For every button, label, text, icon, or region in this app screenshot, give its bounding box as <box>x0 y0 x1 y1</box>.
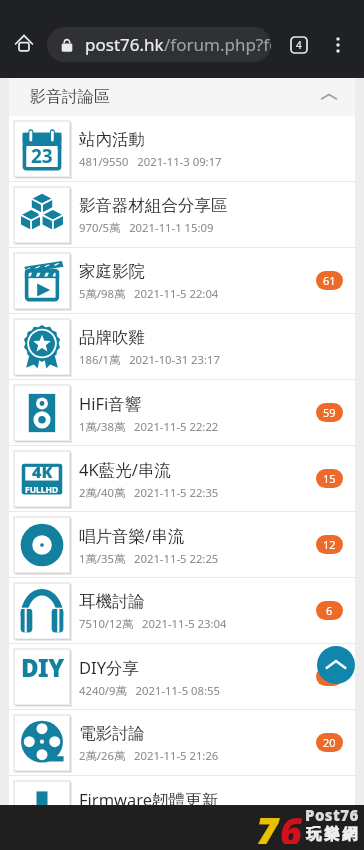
staticText: 站內活動 <box>79 129 145 150</box>
staticText: 電影討論 <box>79 723 145 744</box>
button[interactable]: 唱片音樂/串流 <box>9 512 355 577</box>
staticText: 7510/12萬 2021-11-5 23:04 <box>79 616 227 631</box>
staticText: 20 <box>323 735 336 750</box>
staticText: 186/1萬 2021-10-31 23:17 <box>79 352 220 367</box>
staticText: 3 <box>326 669 333 684</box>
staticText: 6 <box>326 603 333 618</box>
button[interactable]: More options <box>322 29 353 60</box>
button[interactable]: Scroll to top <box>317 646 355 684</box>
staticText: 2萬/40萬 2021-11-5 22:35 <box>79 485 219 500</box>
staticText: 1萬/38萬 2021-11-5 22:22 <box>79 419 219 434</box>
staticText: HiFi音響 <box>79 392 142 415</box>
staticText: 5萬/98萬 2021-11-5 22:04 <box>79 286 219 301</box>
staticText: 品牌吹雞 <box>79 327 145 348</box>
staticText: 4 <box>296 38 302 52</box>
staticText: 59 <box>323 405 336 420</box>
staticText: 12 <box>323 537 336 552</box>
staticText: DIY分享 <box>79 656 139 679</box>
staticText: 影音討論區 <box>30 87 110 107</box>
button[interactable]: Firmware韌體更新 <box>9 776 355 805</box>
staticText: 唱片音樂/串流 <box>79 524 185 547</box>
staticText: FULLHD <box>25 484 59 496</box>
staticText: 家庭影院 <box>79 261 145 282</box>
button[interactable]: 影音器材組合分享區 <box>9 182 355 247</box>
staticText: 1萬/35萬 2021-11-5 22:25 <box>79 551 219 566</box>
staticText: 6 <box>280 805 303 844</box>
button[interactable]: post76.hk <box>47 27 271 62</box>
button[interactable]: 23 <box>9 116 355 181</box>
staticText: 970/5萬 2021-11-1 15:09 <box>79 220 214 235</box>
staticText: 玩樂網 <box>305 825 359 844</box>
staticText: post76.hk <box>85 33 164 56</box>
button[interactable]: Home <box>7 27 41 61</box>
button[interactable]: DIY <box>9 644 355 709</box>
button[interactable]: HiFi音響 <box>9 380 355 445</box>
staticText: 耳機討論 <box>79 591 145 612</box>
staticText: 7 <box>256 805 280 844</box>
staticText: 4K <box>32 461 53 483</box>
staticText: 23 <box>31 143 53 169</box>
button[interactable]: 家庭影院 <box>9 248 355 313</box>
button[interactable]: Tabs <box>283 29 314 60</box>
button[interactable]: 4K <box>9 446 355 511</box>
staticText: 15 <box>323 471 336 486</box>
button[interactable]: 電影討論 <box>9 710 355 775</box>
staticText: Post76 <box>305 805 359 825</box>
staticText: 61 <box>323 273 336 288</box>
staticText: /forum.php?fo <box>164 33 271 56</box>
staticText: 影音器材組合分享區 <box>79 195 228 216</box>
staticText: 4240/9萬 2021-11-5 08:55 <box>79 683 220 698</box>
staticText: 4K藍光/串流 <box>79 458 171 481</box>
staticText: Firmware韌體更新 <box>79 788 219 805</box>
staticText: 481/9550 2021-11-3 09:17 <box>79 154 222 169</box>
button[interactable]: 品牌吹雞 <box>9 314 355 379</box>
button[interactable]: 耳機討論 <box>9 578 355 643</box>
staticText: DIY <box>21 651 64 684</box>
staticText: 2萬/26萬 2021-11-5 21:26 <box>79 748 219 763</box>
button[interactable]: 影音討論區 <box>9 78 355 116</box>
